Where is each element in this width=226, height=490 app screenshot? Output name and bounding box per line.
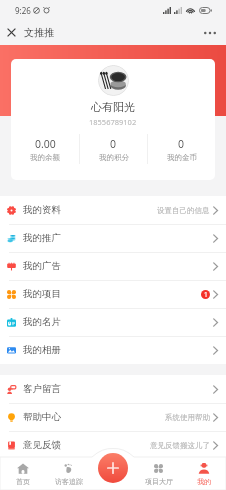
staticText: 设置自己的信息 (157, 206, 210, 215)
staticText: 意见反馈搬这儿了 (150, 441, 210, 450)
staticText: 1 (204, 290, 208, 299)
staticText: 18556789102 (89, 117, 137, 127)
staticText: 我的资料 (23, 204, 61, 216)
button[interactable]: 我的名片 (0, 308, 226, 336)
staticText: 项目大厅 (145, 477, 173, 486)
button[interactable]: 我的相册 (0, 336, 226, 364)
staticText: 我的余额 (30, 153, 60, 162)
button[interactable]: 我的广告 (0, 252, 226, 280)
staticText: 意见反馈 (23, 439, 61, 451)
button[interactable]: 我的 (181, 457, 226, 490)
staticText: 我的 (197, 477, 211, 486)
staticText: 我的金币 (167, 153, 197, 162)
staticText: 首页 (16, 477, 30, 486)
button[interactable]: 访客追踪 (46, 457, 91, 490)
button[interactable]: 项目大厅 (136, 457, 181, 490)
button[interactable]: 0 (80, 131, 147, 167)
staticText: 系统使用帮助 (165, 413, 210, 422)
staticText: 客户留言 (23, 383, 61, 395)
staticText: 我的项目 (23, 288, 61, 300)
staticText: 访客追踪 (55, 477, 83, 486)
staticText: 0 (178, 137, 185, 151)
button[interactable]: 0.00 (11, 131, 79, 167)
staticText: 9:26 (15, 5, 31, 16)
button[interactable]: Add (98, 453, 128, 483)
staticText: 我的广告 (23, 260, 61, 272)
staticText: 我的名片 (23, 316, 61, 328)
button[interactable]: 首页 (0, 457, 46, 490)
staticText: 我的积分 (99, 153, 129, 162)
button[interactable]: 客户留言 (0, 375, 226, 403)
button[interactable]: 我的项目 (0, 280, 226, 308)
staticText: 我的相册 (23, 344, 61, 356)
staticText: 0.00 (35, 137, 56, 151)
staticText: 文推推 (24, 26, 54, 39)
button[interactable]: Close (1, 22, 22, 43)
button[interactable]: 意见反馈 (0, 431, 226, 459)
button[interactable]: 0 (148, 131, 215, 167)
staticText: 心有阳光 (91, 100, 135, 114)
staticText: 0 (110, 137, 117, 151)
button[interactable]: More options (198, 21, 222, 45)
staticText: 帮助中心 (23, 411, 61, 423)
button[interactable]: 帮助中心 (0, 403, 226, 431)
button[interactable]: 我的资料 (0, 196, 226, 224)
button[interactable]: 我的推广 (0, 224, 226, 252)
staticText: 我的推广 (23, 232, 61, 244)
